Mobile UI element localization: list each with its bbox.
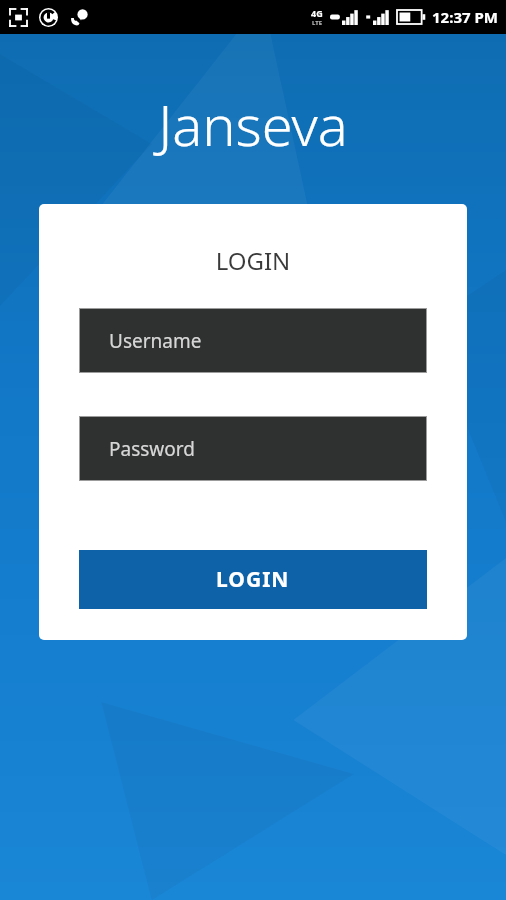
staticText: Janseva <box>0 86 506 162</box>
button[interactable]: LOGIN <box>79 550 427 609</box>
staticText: LOGIN <box>79 244 427 277</box>
staticText: LOGIN <box>216 565 290 594</box>
other: Missed call <box>70 8 89 27</box>
staticText: 12:37 PM <box>432 7 498 27</box>
staticText: 4G <box>311 7 323 19</box>
staticText: Username <box>109 328 202 354</box>
other: App notification <box>39 8 58 27</box>
other: Screenshot <box>10 9 27 26</box>
button[interactable]: Username <box>79 308 427 373</box>
staticText: Password <box>109 436 195 462</box>
staticText: LTE <box>312 19 323 27</box>
button[interactable]: Password <box>79 416 427 481</box>
